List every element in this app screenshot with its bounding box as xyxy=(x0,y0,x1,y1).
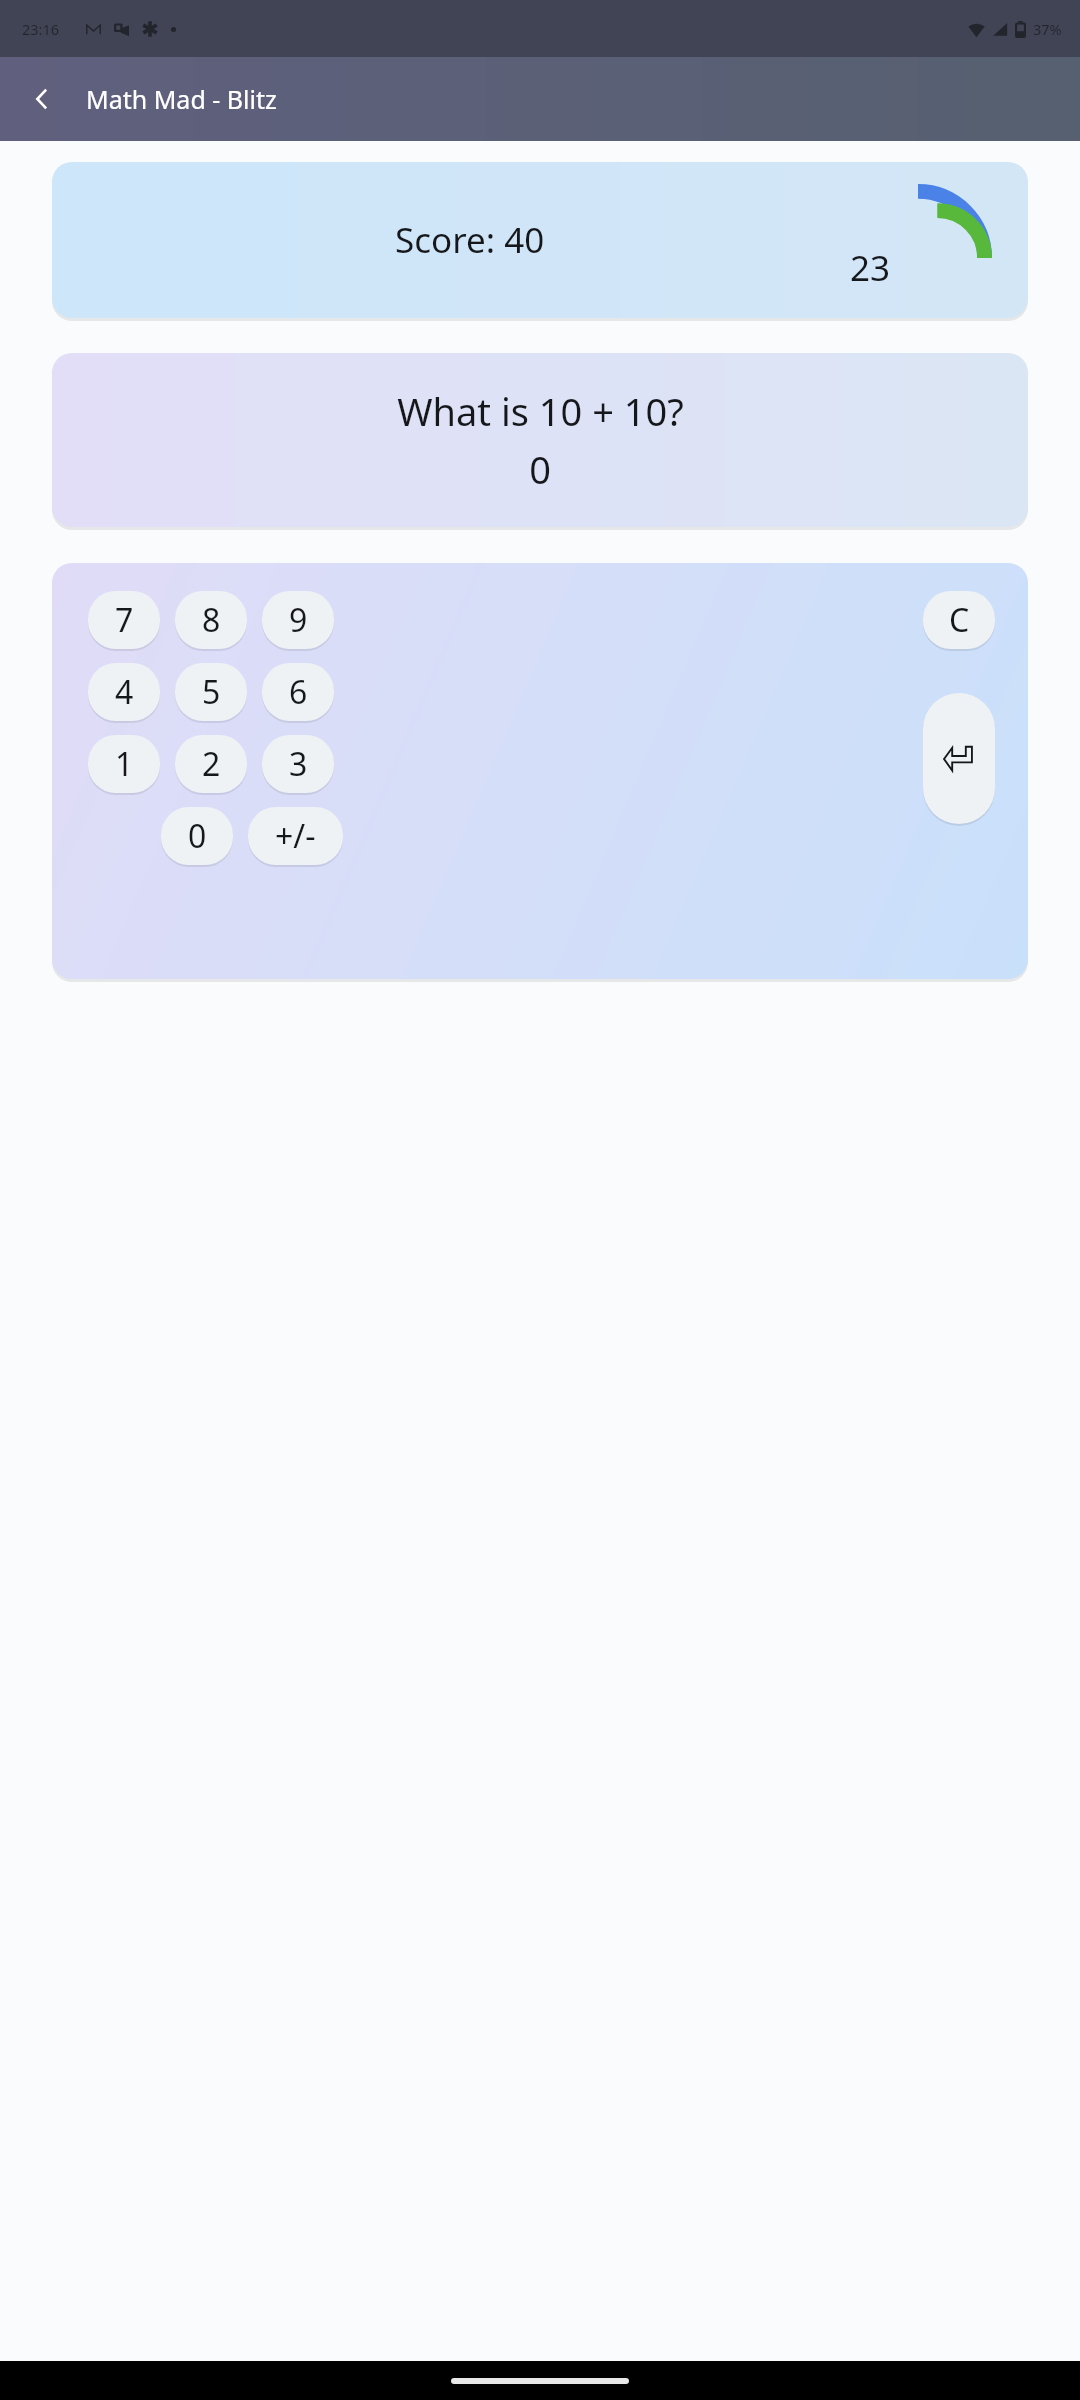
staticText: 8 xyxy=(202,598,221,642)
staticText: 23:16 xyxy=(22,19,60,39)
button[interactable]: 3 xyxy=(262,735,334,793)
button[interactable]: 8 xyxy=(175,591,247,649)
staticText: 5 xyxy=(202,670,221,714)
staticText: 6 xyxy=(289,670,308,714)
button[interactable]: 0 xyxy=(161,807,233,865)
button[interactable]: 4 xyxy=(88,663,160,721)
button[interactable]: Enter xyxy=(923,693,995,824)
button[interactable]: What is 10 + 10? xyxy=(52,353,1028,527)
staticText: 0 xyxy=(188,814,207,858)
staticText: +/- xyxy=(275,814,316,858)
button[interactable]: Back xyxy=(18,75,66,123)
button[interactable]: 9 xyxy=(262,591,334,649)
staticText: What is 10 + 10? xyxy=(397,385,684,437)
button[interactable]: +/- xyxy=(248,807,343,865)
staticText: Math Mad - Blitz xyxy=(86,82,277,116)
button[interactable]: 5 xyxy=(175,663,247,721)
staticText: 2 xyxy=(202,742,221,786)
button[interactable]: 1 xyxy=(88,735,160,793)
button[interactable]: C xyxy=(923,591,995,649)
staticText: Score: 40 xyxy=(395,216,545,264)
button[interactable]: 7 xyxy=(88,591,160,649)
button[interactable]: 2 xyxy=(175,735,247,793)
staticText: C xyxy=(949,598,970,642)
staticText: 3 xyxy=(289,742,308,786)
button[interactable]: 6 xyxy=(262,663,334,721)
staticText: 9 xyxy=(289,598,308,642)
staticText: 7 xyxy=(115,598,134,642)
staticText: 23 xyxy=(850,244,891,292)
staticText: 37% xyxy=(1033,19,1062,39)
staticText: 0 xyxy=(529,443,551,495)
button[interactable]: Score: 40 xyxy=(52,162,1028,318)
staticText: 1 xyxy=(115,742,134,786)
staticText: 4 xyxy=(115,670,134,714)
